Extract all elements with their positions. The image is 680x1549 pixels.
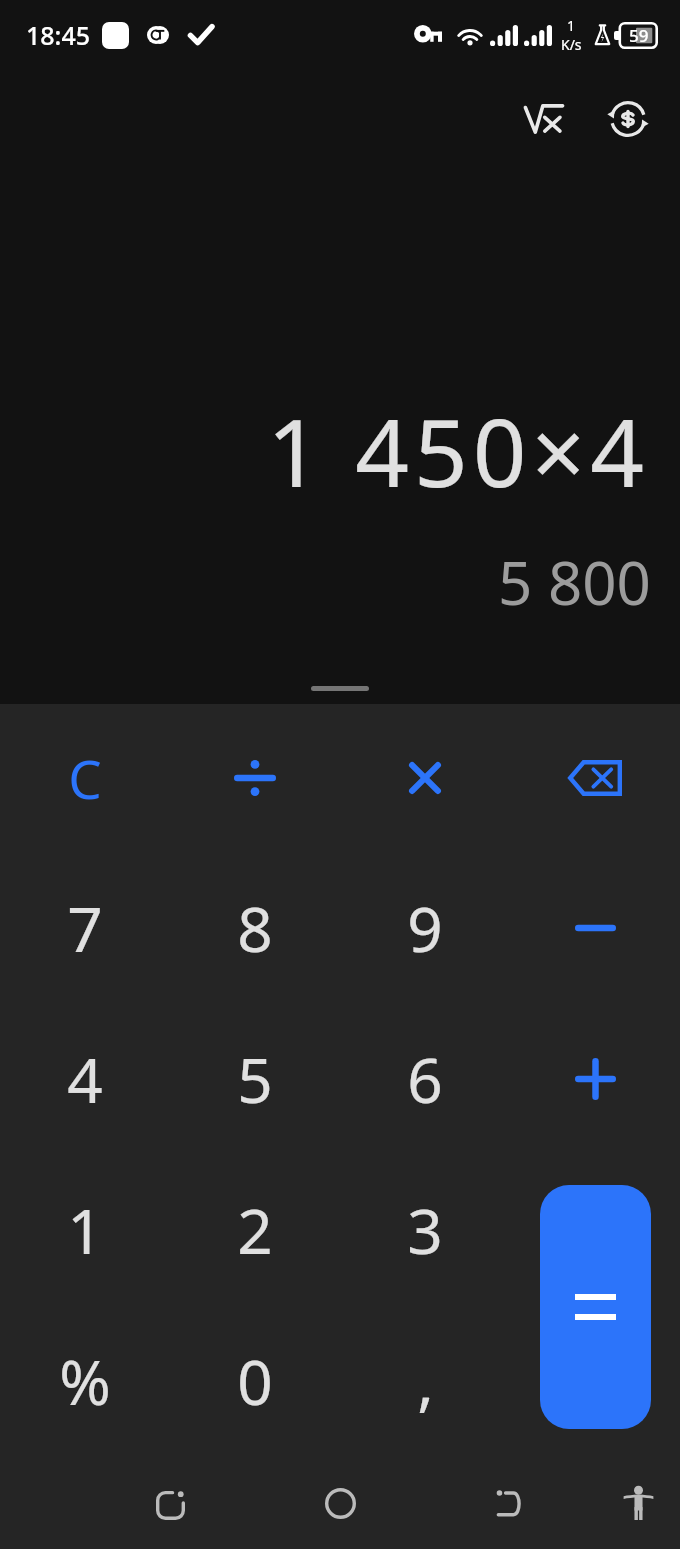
button[interactable]: Multiply (340, 703, 510, 853)
button[interactable]: 3 (340, 1155, 510, 1305)
button[interactable]: Backspace (510, 703, 680, 853)
button[interactable]: 4 (0, 1004, 170, 1154)
staticText: 8 (237, 886, 273, 970)
button[interactable]: , (340, 1306, 510, 1456)
button[interactable]: C (0, 703, 170, 853)
button[interactable]: 7 (0, 853, 170, 1003)
button[interactable]: Recents (134, 1467, 206, 1539)
staticText: % (59, 1339, 111, 1423)
button[interactable]: Minus (510, 853, 680, 1003)
button[interactable]: Currency converter (592, 83, 664, 155)
staticText: 9 (407, 886, 443, 970)
button[interactable]: 0 (170, 1306, 340, 1456)
staticText: 5 800 (498, 541, 651, 623)
button[interactable]: Equals (540, 1185, 651, 1429)
staticText: 0 (237, 1339, 273, 1423)
staticText: K/s (561, 35, 582, 54)
staticText: , (417, 1339, 434, 1423)
staticText: 3 (407, 1188, 443, 1272)
staticText: 1 (67, 1188, 103, 1272)
staticText: 1 (567, 16, 576, 35)
button[interactable]: % (0, 1306, 170, 1456)
button[interactable]: Square root (508, 83, 580, 155)
button[interactable]: Back (474, 1467, 546, 1539)
staticText: C (68, 742, 102, 814)
button[interactable]: 6 (340, 1004, 510, 1154)
button[interactable]: 1 (0, 1155, 170, 1305)
staticText: 18:45 (26, 18, 91, 52)
staticText: 59 (629, 24, 649, 47)
staticText: 2 (237, 1188, 273, 1272)
button[interactable]: Plus (510, 1004, 680, 1154)
staticText: 5 (237, 1037, 273, 1121)
staticText: 1 450×4 (267, 387, 650, 515)
button[interactable]: 2 (170, 1155, 340, 1305)
button[interactable]: Divide (170, 703, 340, 853)
button[interactable]: 5 (170, 1004, 340, 1154)
staticText: 6 (407, 1037, 443, 1121)
button[interactable]: Home (304, 1467, 376, 1539)
staticText: 7 (67, 886, 103, 970)
button[interactable]: Accessibility (602, 1467, 674, 1539)
button[interactable]: 8 (170, 853, 340, 1003)
staticText: 4 (67, 1037, 103, 1121)
button[interactable]: 9 (340, 853, 510, 1003)
